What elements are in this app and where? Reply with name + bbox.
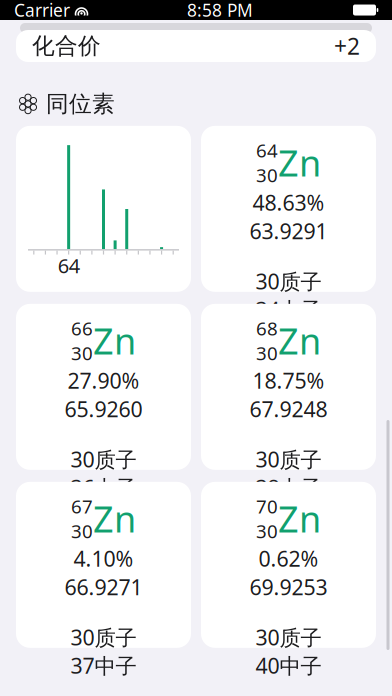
staticText: 68: [256, 316, 278, 341]
staticText: 36中子: [70, 473, 136, 502]
staticText: 27.90%: [67, 366, 139, 395]
staticText: 38中子: [255, 473, 321, 502]
staticText: 65.9260: [64, 395, 142, 423]
staticText: 67.9248: [249, 395, 327, 423]
button[interactable]: 70: [201, 482, 376, 648]
staticText: 0.62%: [258, 544, 318, 573]
staticText: 8:58 PM: [187, 0, 253, 21]
button[interactable]: 64: [201, 126, 376, 292]
staticText: +2: [334, 31, 360, 61]
staticText: 34中子: [255, 295, 321, 324]
staticText: 30质子: [255, 623, 321, 651]
staticText: 64: [58, 252, 80, 279]
staticText: 30: [256, 519, 278, 543]
staticText: 64: [256, 138, 278, 163]
staticText: Zn: [278, 495, 321, 542]
staticText: 30质子: [255, 445, 321, 473]
staticText: 66: [71, 316, 93, 341]
staticText: 40中子: [255, 651, 321, 680]
staticText: Carrier: [14, 0, 70, 21]
staticText: 同位素: [46, 90, 115, 118]
staticText: 18.75%: [252, 366, 324, 395]
staticText: Zn: [93, 495, 136, 542]
button[interactable]: 67: [16, 482, 191, 648]
button[interactable]: 化合价: [16, 30, 376, 62]
staticText: 37中子: [70, 651, 136, 680]
staticText: 48.63%: [252, 188, 324, 217]
staticText: 30质子: [70, 445, 136, 473]
staticText: 30质子: [70, 623, 136, 651]
button[interactable]: 66: [16, 304, 191, 470]
staticText: 30: [71, 341, 93, 365]
staticText: Zn: [93, 317, 136, 364]
staticText: 30: [256, 163, 278, 187]
staticText: 30质子: [255, 267, 321, 295]
staticText: 69.9253: [249, 573, 327, 601]
staticText: Zn: [278, 139, 321, 186]
button[interactable]: 68: [201, 304, 376, 470]
staticText: 4.10%: [73, 544, 133, 573]
staticText: 30: [71, 519, 93, 543]
staticText: 化合价: [32, 32, 101, 60]
staticText: 70: [256, 494, 278, 519]
staticText: 63.9291: [249, 217, 327, 245]
staticText: 67: [71, 494, 93, 519]
staticText: 30: [256, 341, 278, 365]
staticText: 66.9271: [64, 573, 142, 601]
staticText: Zn: [278, 317, 321, 364]
